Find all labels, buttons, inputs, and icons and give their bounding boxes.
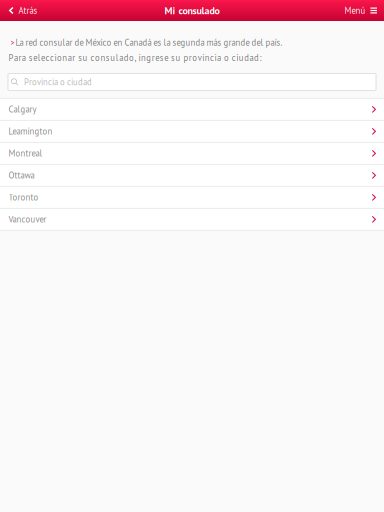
button[interactable]: Montreal	[0, 142, 384, 164]
button[interactable]: Menú	[336, 0, 384, 21]
staticText: Vancouver	[8, 214, 46, 225]
staticText: Menú	[344, 5, 365, 16]
staticText: >	[10, 37, 14, 47]
staticText: Calgary	[8, 104, 36, 115]
staticText: Leamington	[8, 126, 52, 137]
button[interactable]: Atrás	[0, 0, 46, 21]
staticText: Provincia o ciudad	[24, 76, 92, 87]
staticText: Atrás	[19, 5, 38, 16]
button[interactable]: Calgary	[0, 98, 384, 120]
staticText: La red consular de México en Canadá es l…	[15, 37, 282, 48]
staticText: Mi consulado	[164, 4, 219, 17]
button[interactable]: Toronto	[0, 186, 384, 208]
staticText: Montreal	[8, 148, 42, 159]
button[interactable]: Vancouver	[0, 208, 384, 230]
staticText: Toronto	[8, 192, 38, 203]
button[interactable]: Ottawa	[0, 164, 384, 186]
staticText: Ottawa	[8, 170, 34, 181]
button[interactable]: Leamington	[0, 120, 384, 142]
staticText: Para seleccionar su consulado, ingrese s…	[8, 52, 261, 63]
